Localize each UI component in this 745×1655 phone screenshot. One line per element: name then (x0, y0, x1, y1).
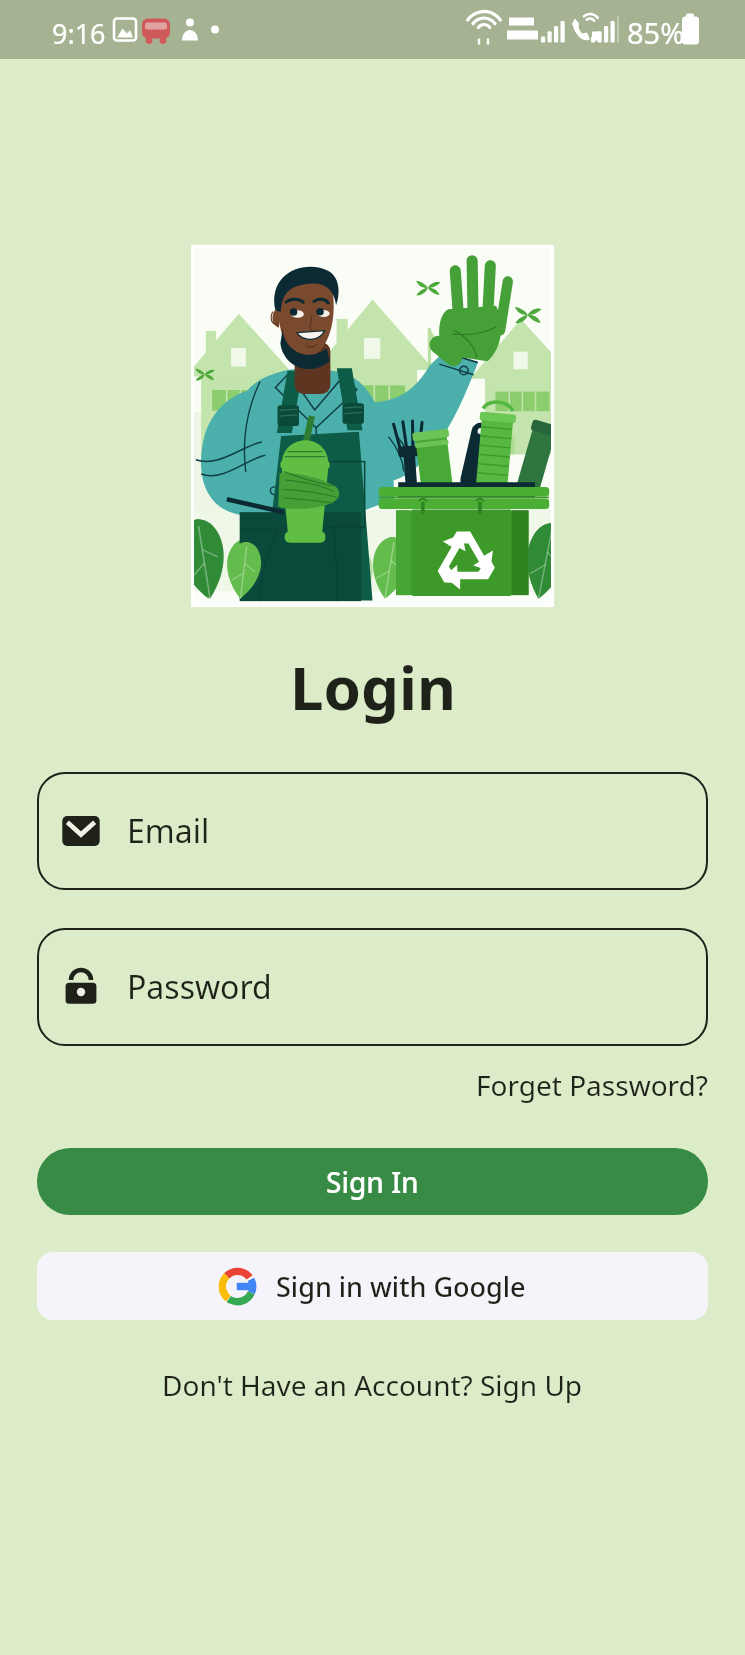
staticText: Email (127, 809, 210, 853)
staticText: Forget Password? (476, 1066, 708, 1104)
button[interactable]: Sign in with Google (37, 1252, 708, 1320)
staticText: 9:16 (52, 15, 106, 52)
button[interactable]: Email (37, 772, 708, 890)
button[interactable]: Password (37, 928, 708, 1046)
button[interactable]: Forget Password? (468, 1062, 716, 1108)
staticText: Sign in with Google (276, 1268, 526, 1305)
staticText: Password (127, 965, 272, 1009)
staticText: 85% (627, 13, 685, 52)
button[interactable]: Don't Have an Account? Sign Up (154, 1362, 591, 1408)
staticText: Don't Have an Account? Sign Up (162, 1366, 583, 1404)
staticText: Sign In (326, 1163, 419, 1201)
other: Recycling worker illustration (191, 245, 554, 607)
staticText: Login (290, 646, 456, 728)
button[interactable]: Sign In (37, 1148, 708, 1215)
